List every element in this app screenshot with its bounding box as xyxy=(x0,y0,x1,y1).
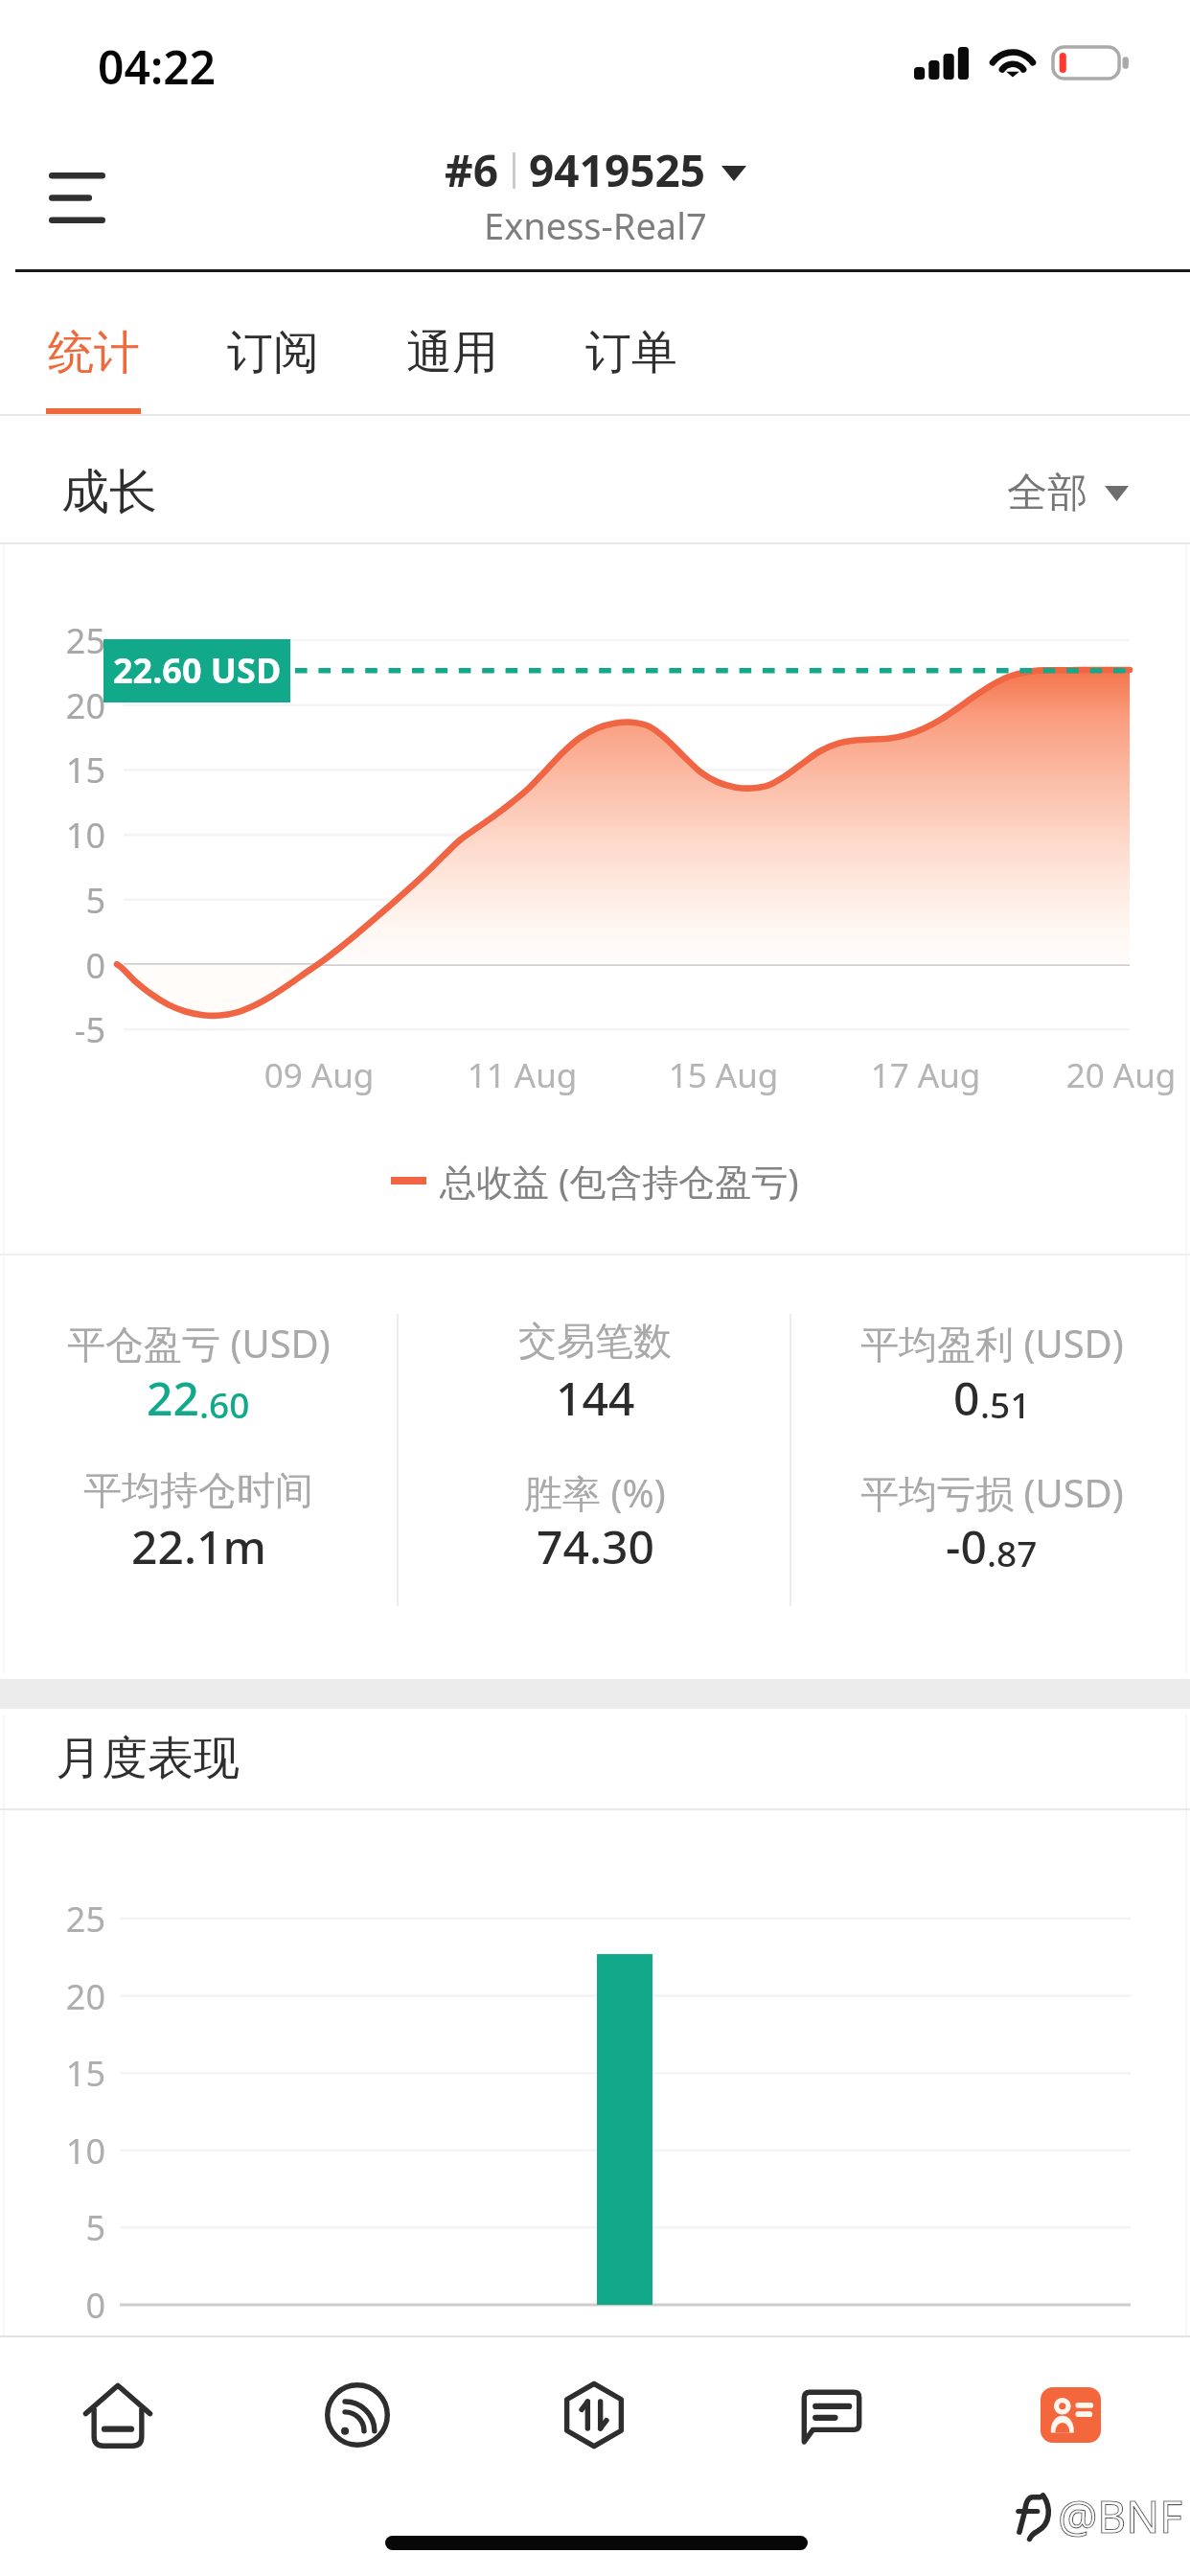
staticText: 20 xyxy=(21,682,105,729)
staticText: 全部 xyxy=(1007,468,1087,518)
staticText: -0 xyxy=(946,1515,987,1577)
staticText: -5 xyxy=(21,1006,105,1053)
staticText: 平均盈利 (USD) xyxy=(860,1317,1124,1369)
staticText: 25 xyxy=(21,617,105,664)
staticText: .87 xyxy=(987,1529,1038,1576)
button[interactable]: 统计 xyxy=(46,260,141,414)
staticText: 15 xyxy=(21,2050,105,2097)
button[interactable]: 订阅 xyxy=(225,260,320,414)
staticText: 25 xyxy=(21,1896,105,1943)
button[interactable]: Signals xyxy=(302,2359,413,2471)
staticText: 11 Aug xyxy=(426,1052,618,1098)
staticText: 平均持仓时间 xyxy=(83,1466,313,1514)
staticText: 成长 xyxy=(61,462,157,522)
staticText: 订阅 xyxy=(227,324,319,381)
staticText: 月度表现 xyxy=(56,1730,240,1787)
staticText: 15 Aug xyxy=(628,1052,819,1098)
staticText: 总收益 (包含持仓盈亏) xyxy=(440,1156,799,1206)
button[interactable]: Account xyxy=(1015,2359,1126,2471)
staticText: 5 xyxy=(21,877,105,924)
staticText: 平均亏损 (USD) xyxy=(860,1466,1124,1519)
staticText: 17 Aug xyxy=(830,1052,1021,1098)
staticText: 0 xyxy=(21,942,105,989)
staticText: 统计 xyxy=(48,324,140,381)
staticText: .60 xyxy=(199,1380,250,1428)
staticText: .51 xyxy=(980,1380,1031,1428)
staticText: 5 xyxy=(21,2204,105,2251)
staticText: 22.1m xyxy=(131,1515,266,1577)
staticText: 交易笔数 xyxy=(518,1317,672,1365)
button[interactable]: Home xyxy=(62,2359,173,2471)
button[interactable]: Chat xyxy=(776,2359,887,2471)
staticText: 20 xyxy=(21,1973,105,2020)
staticText: 0 xyxy=(953,1367,980,1429)
staticText: 0 xyxy=(21,2282,105,2329)
button[interactable]: #6 xyxy=(445,140,746,250)
staticText: 通用 xyxy=(406,324,498,381)
staticText: 15 xyxy=(21,747,105,793)
button[interactable]: Menu xyxy=(20,144,135,251)
staticText: 144 xyxy=(556,1367,635,1429)
button[interactable]: 订单 xyxy=(584,260,678,414)
staticText: #6 xyxy=(445,140,499,200)
staticText: 10 xyxy=(21,2127,105,2174)
staticText: 22.60 USD xyxy=(113,647,282,694)
staticText: 9419525 xyxy=(529,140,706,200)
staticText: 订单 xyxy=(585,324,677,381)
staticText: 04:22 xyxy=(98,35,217,98)
staticText: 20 Aug xyxy=(1025,1052,1190,1098)
staticText: Exness-Real7 xyxy=(484,200,707,250)
staticText: 胜率 (%) xyxy=(524,1466,666,1519)
staticText: 平仓盈亏 (USD) xyxy=(67,1317,331,1369)
staticText: 74.30 xyxy=(537,1515,654,1577)
staticText: 09 Aug xyxy=(223,1052,415,1098)
button[interactable]: Trade xyxy=(538,2359,650,2471)
button[interactable]: 全部 xyxy=(1007,468,1129,518)
staticText: 22 xyxy=(147,1367,199,1429)
button[interactable]: 通用 xyxy=(404,260,499,414)
staticText: 10 xyxy=(21,812,105,859)
staticText: @BNF xyxy=(1058,2486,1183,2546)
